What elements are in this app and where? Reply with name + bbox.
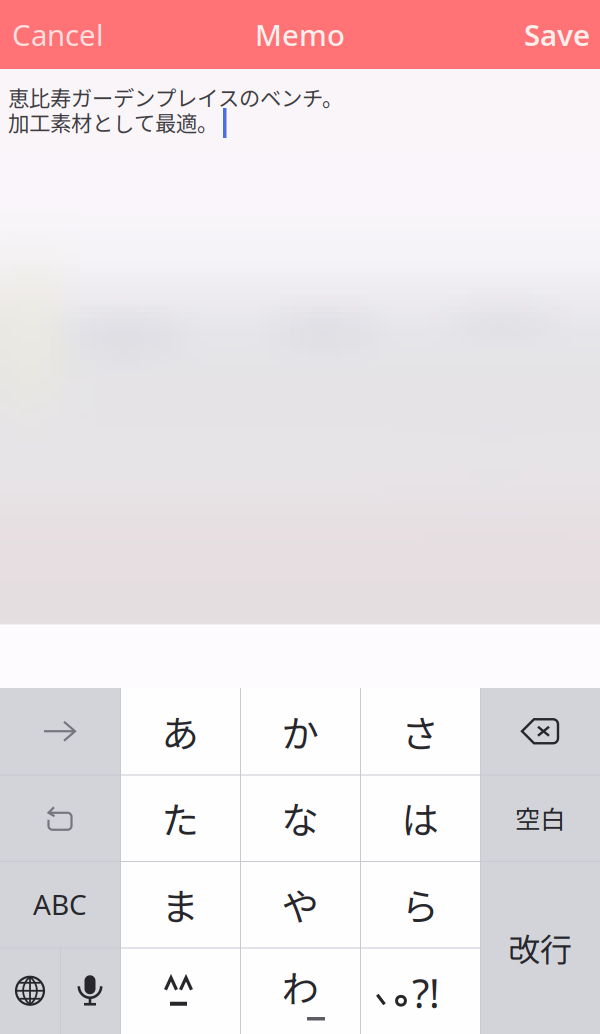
button[interactable]: た: [120, 774, 240, 861]
button[interactable]: Emoticons: [120, 947, 240, 1034]
staticText: 改行: [508, 924, 572, 971]
staticText: ま: [161, 877, 198, 931]
staticText: 恵比寿ガーデンプレイスのベンチ。: [8, 82, 343, 112]
button[interactable]: Next candidate: [0, 688, 120, 774]
staticText: は: [401, 791, 438, 845]
button[interactable]: ま: [120, 861, 240, 947]
button[interactable]: Switch keyboard: [0, 947, 60, 1034]
button[interactable]: Dictation: [60, 947, 120, 1034]
staticText: ABC: [33, 886, 87, 923]
button[interactable]: あ: [120, 688, 240, 774]
button[interactable]: な: [240, 774, 360, 861]
staticText: ?!: [412, 966, 440, 1019]
staticText: Memo: [255, 15, 345, 54]
staticText: あ: [161, 704, 198, 758]
staticText: さ: [401, 704, 438, 758]
staticText: た: [161, 791, 198, 845]
staticText: Save: [524, 15, 590, 54]
button[interactable]: さ: [360, 688, 480, 774]
staticText: Cancel: [12, 15, 104, 54]
staticText: 空白: [515, 799, 565, 836]
button[interactable]: Save: [497, 0, 600, 69]
button[interactable]: は: [360, 774, 480, 861]
button[interactable]: Punctuation: [360, 947, 480, 1034]
button[interactable]: Undo: [0, 774, 120, 861]
staticText: ら: [401, 877, 438, 931]
button[interactable]: か: [240, 688, 360, 774]
button[interactable]: ABC: [0, 861, 120, 947]
button[interactable]: Memo: [220, 0, 380, 69]
button[interactable]: 改行: [480, 861, 600, 1034]
button[interactable]: や: [240, 861, 360, 947]
staticText: か: [281, 704, 318, 758]
button[interactable]: 空白: [480, 774, 600, 861]
staticText: 加工素材として最適。: [8, 107, 218, 137]
button[interactable]: Cancel: [0, 0, 123, 69]
button[interactable]: Delete: [480, 688, 600, 774]
staticText: や: [281, 877, 318, 931]
button[interactable]: わ: [240, 947, 360, 1034]
staticText: わ: [281, 960, 318, 1014]
staticText: な: [281, 791, 318, 845]
button[interactable]: ら: [360, 861, 480, 947]
